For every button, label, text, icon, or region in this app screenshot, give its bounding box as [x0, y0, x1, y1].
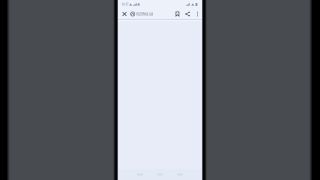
button[interactable]: Share	[182, 9, 193, 19]
staticText: rozetka.ua	[136, 12, 153, 16]
button[interactable]: Bookmark	[173, 9, 182, 19]
button[interactable]: More options	[193, 9, 202, 19]
button[interactable]: Back	[130, 169, 150, 180]
staticText: 14:17	[121, 2, 128, 7]
button[interactable]: Site information and address	[129, 9, 157, 19]
button[interactable]: Close	[119, 9, 129, 19]
